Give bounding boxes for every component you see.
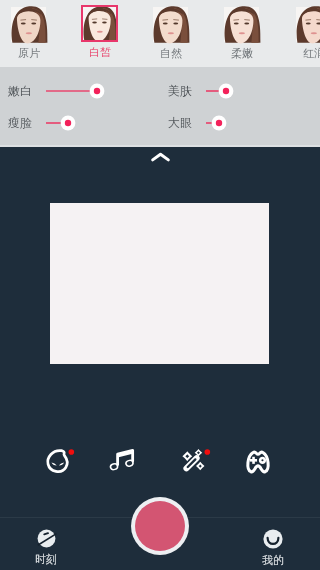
staticText: 嫩白 bbox=[8, 83, 32, 98]
button[interactable]: 大眼 bbox=[202, 114, 229, 132]
staticText: 大眼 bbox=[168, 115, 192, 130]
staticText: 瘦脸 bbox=[8, 115, 32, 130]
button[interactable]: Effects bbox=[176, 442, 212, 478]
button[interactable]: Collapse panel bbox=[144, 148, 176, 166]
button[interactable]: 原片 bbox=[0, 0, 64, 60]
button[interactable]: 我的 bbox=[245, 529, 301, 567]
staticText: 柔嫩 bbox=[231, 46, 253, 60]
button[interactable]: 柔嫩 bbox=[206, 0, 277, 60]
button[interactable]: 时刻 bbox=[18, 529, 74, 566]
button[interactable]: Music bbox=[107, 442, 143, 478]
button[interactable]: 嫩白 bbox=[42, 82, 107, 100]
button[interactable]: Shutter bbox=[131, 497, 189, 555]
button[interactable]: Games bbox=[240, 442, 276, 478]
staticText: 自然 bbox=[160, 46, 182, 60]
staticText: 我的 bbox=[262, 553, 284, 567]
button[interactable]: 白皙 bbox=[64, 0, 135, 59]
staticText: 美肤 bbox=[168, 83, 192, 98]
button[interactable]: 红润 bbox=[278, 0, 320, 60]
button[interactable]: 瘦脸 bbox=[42, 114, 78, 132]
button[interactable]: 美肤 bbox=[202, 82, 236, 100]
staticText: 红润 bbox=[303, 46, 320, 60]
button[interactable]: 自然 bbox=[135, 0, 206, 60]
staticText: 原片 bbox=[18, 46, 40, 60]
staticText: 白皙 bbox=[89, 45, 111, 59]
button[interactable]: Stickers bbox=[40, 442, 76, 478]
staticText: 时刻 bbox=[35, 552, 57, 566]
